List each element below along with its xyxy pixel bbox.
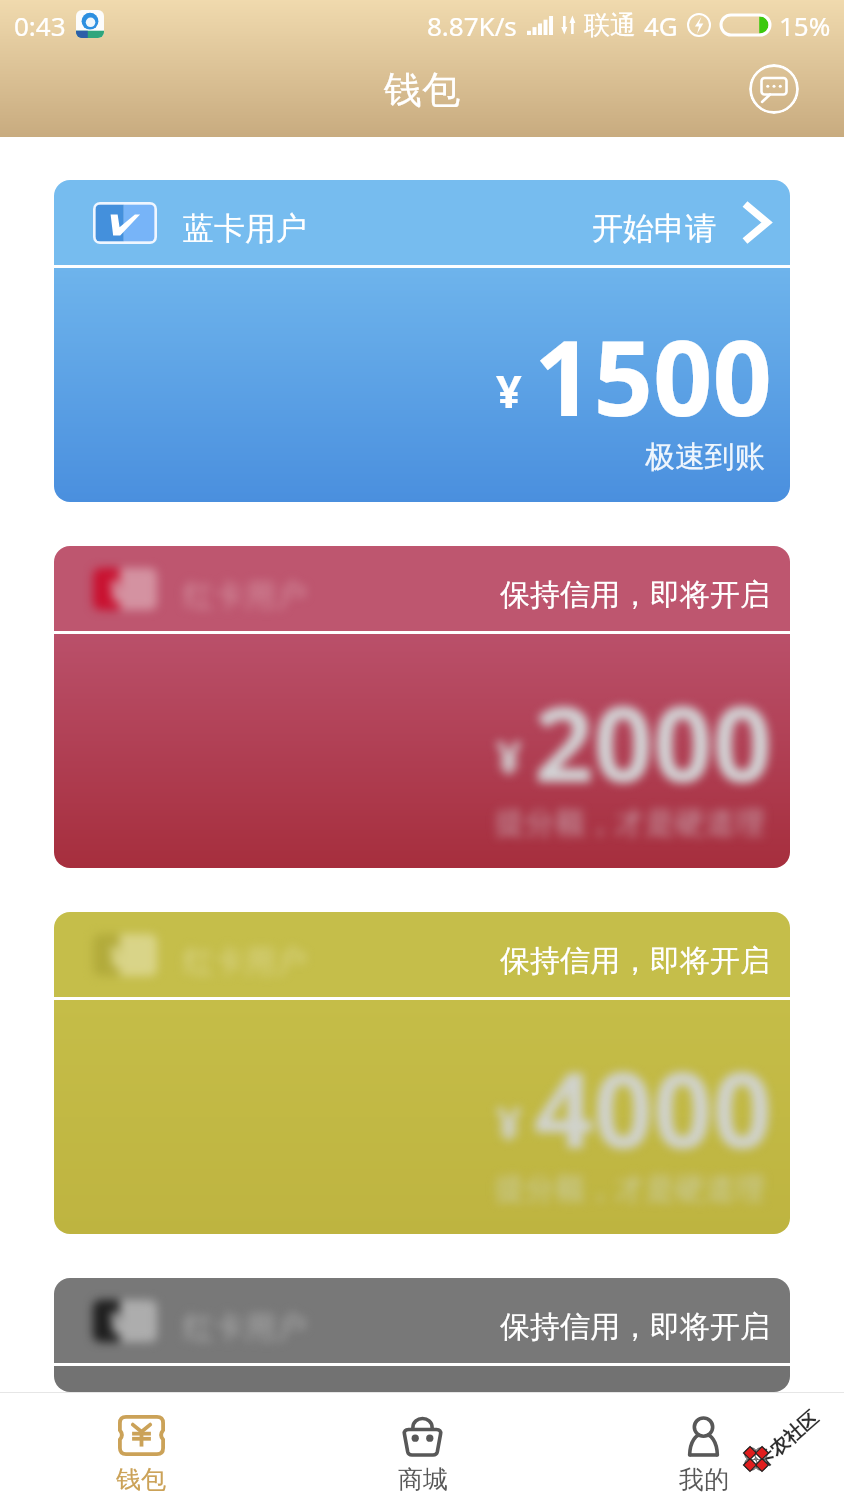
staticText: 蓝卡用户 — [183, 209, 307, 248]
staticText: 钱包 — [116, 1464, 166, 1495]
staticText: 我的 — [679, 1464, 729, 1495]
button[interactable]: 商城 — [282, 1393, 563, 1500]
staticText: 红卡用户 — [183, 942, 307, 981]
staticText: 卡农社区 — [750, 1406, 823, 1474]
staticText: 开始申请 — [592, 209, 716, 248]
button[interactable]: 客服消息 — [749, 64, 799, 114]
staticText: 2000 — [534, 671, 772, 813]
staticText: 4000 — [534, 1037, 772, 1179]
staticText: 1500 — [534, 305, 772, 447]
staticText: 提分额，才是硬道理 — [495, 804, 765, 842]
button[interactable]: 红卡用户 — [54, 912, 790, 1234]
staticText: 0:43 — [14, 8, 66, 43]
staticText: 极速到账 — [645, 438, 765, 476]
button[interactable]: 钱包 — [0, 1393, 282, 1500]
staticText: 红卡用户 — [183, 576, 307, 615]
button[interactable]: 蓝卡用户 — [54, 180, 790, 502]
staticText: 商城 — [398, 1464, 448, 1495]
staticText: 15% — [779, 8, 831, 43]
staticText: ¥ — [496, 726, 522, 787]
staticText: 保持信用，即将开启 — [500, 1308, 770, 1346]
staticText: ¥ — [496, 1092, 522, 1153]
staticText: 钱包 — [384, 66, 460, 114]
staticText: 红卡用户 — [183, 1308, 307, 1347]
staticText: 提分额，才是硬道理 — [495, 1170, 765, 1208]
staticText: 保持信用，即将开启 — [500, 942, 770, 980]
staticText: 保持信用，即将开启 — [500, 576, 770, 614]
staticText: ¥ — [496, 360, 522, 421]
staticText: 联通 — [584, 9, 636, 42]
staticText: 8.87K/s — [427, 8, 517, 43]
button[interactable]: 我的 — [563, 1393, 844, 1500]
button[interactable]: 红卡用户 — [54, 1278, 790, 1392]
button[interactable]: 红卡用户 — [54, 546, 790, 868]
staticText: 4G — [644, 8, 678, 43]
